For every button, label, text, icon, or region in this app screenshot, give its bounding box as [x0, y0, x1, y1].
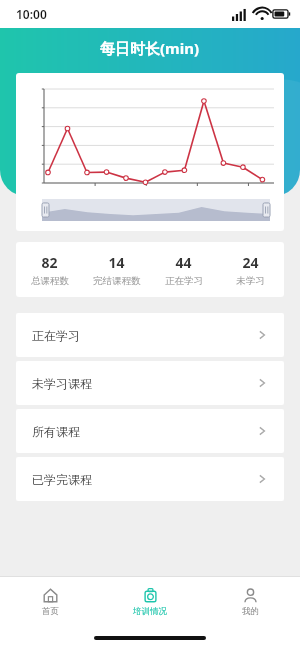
staticText: 我的: [242, 606, 259, 617]
staticText: 82: [41, 253, 58, 272]
staticText: 24: [242, 253, 259, 272]
staticText: 首页: [42, 606, 59, 617]
staticText: 所有课程: [32, 424, 80, 439]
staticText: 已学完课程: [32, 472, 92, 487]
button[interactable]: 24: [217, 253, 284, 287]
button[interactable]: 未学习课程: [16, 361, 284, 405]
button[interactable]: 我的: [200, 588, 300, 617]
staticText: 未学习课程: [32, 376, 92, 391]
button[interactable]: 培训情况: [100, 588, 200, 617]
staticText: 未学习: [236, 275, 265, 287]
button[interactable]: 44: [150, 253, 217, 287]
staticText: 44: [175, 253, 192, 272]
button[interactable]: 首页: [0, 588, 100, 617]
staticText: 每日时长(min): [100, 38, 200, 58]
staticText: 培训情况: [133, 606, 167, 617]
button[interactable]: 已学完课程: [16, 457, 284, 501]
staticText: 正在学习: [32, 328, 80, 343]
button[interactable]: 14: [83, 253, 150, 287]
button[interactable]: 正在学习: [16, 313, 284, 357]
staticText: 完结课程数: [93, 275, 141, 287]
button[interactable]: 82: [16, 253, 83, 287]
staticText: 10:00: [16, 6, 47, 22]
staticText: 总课程数: [31, 275, 69, 287]
staticText: 14: [108, 253, 125, 272]
button[interactable]: 所有课程: [16, 409, 284, 453]
staticText: 正在学习: [165, 275, 203, 287]
